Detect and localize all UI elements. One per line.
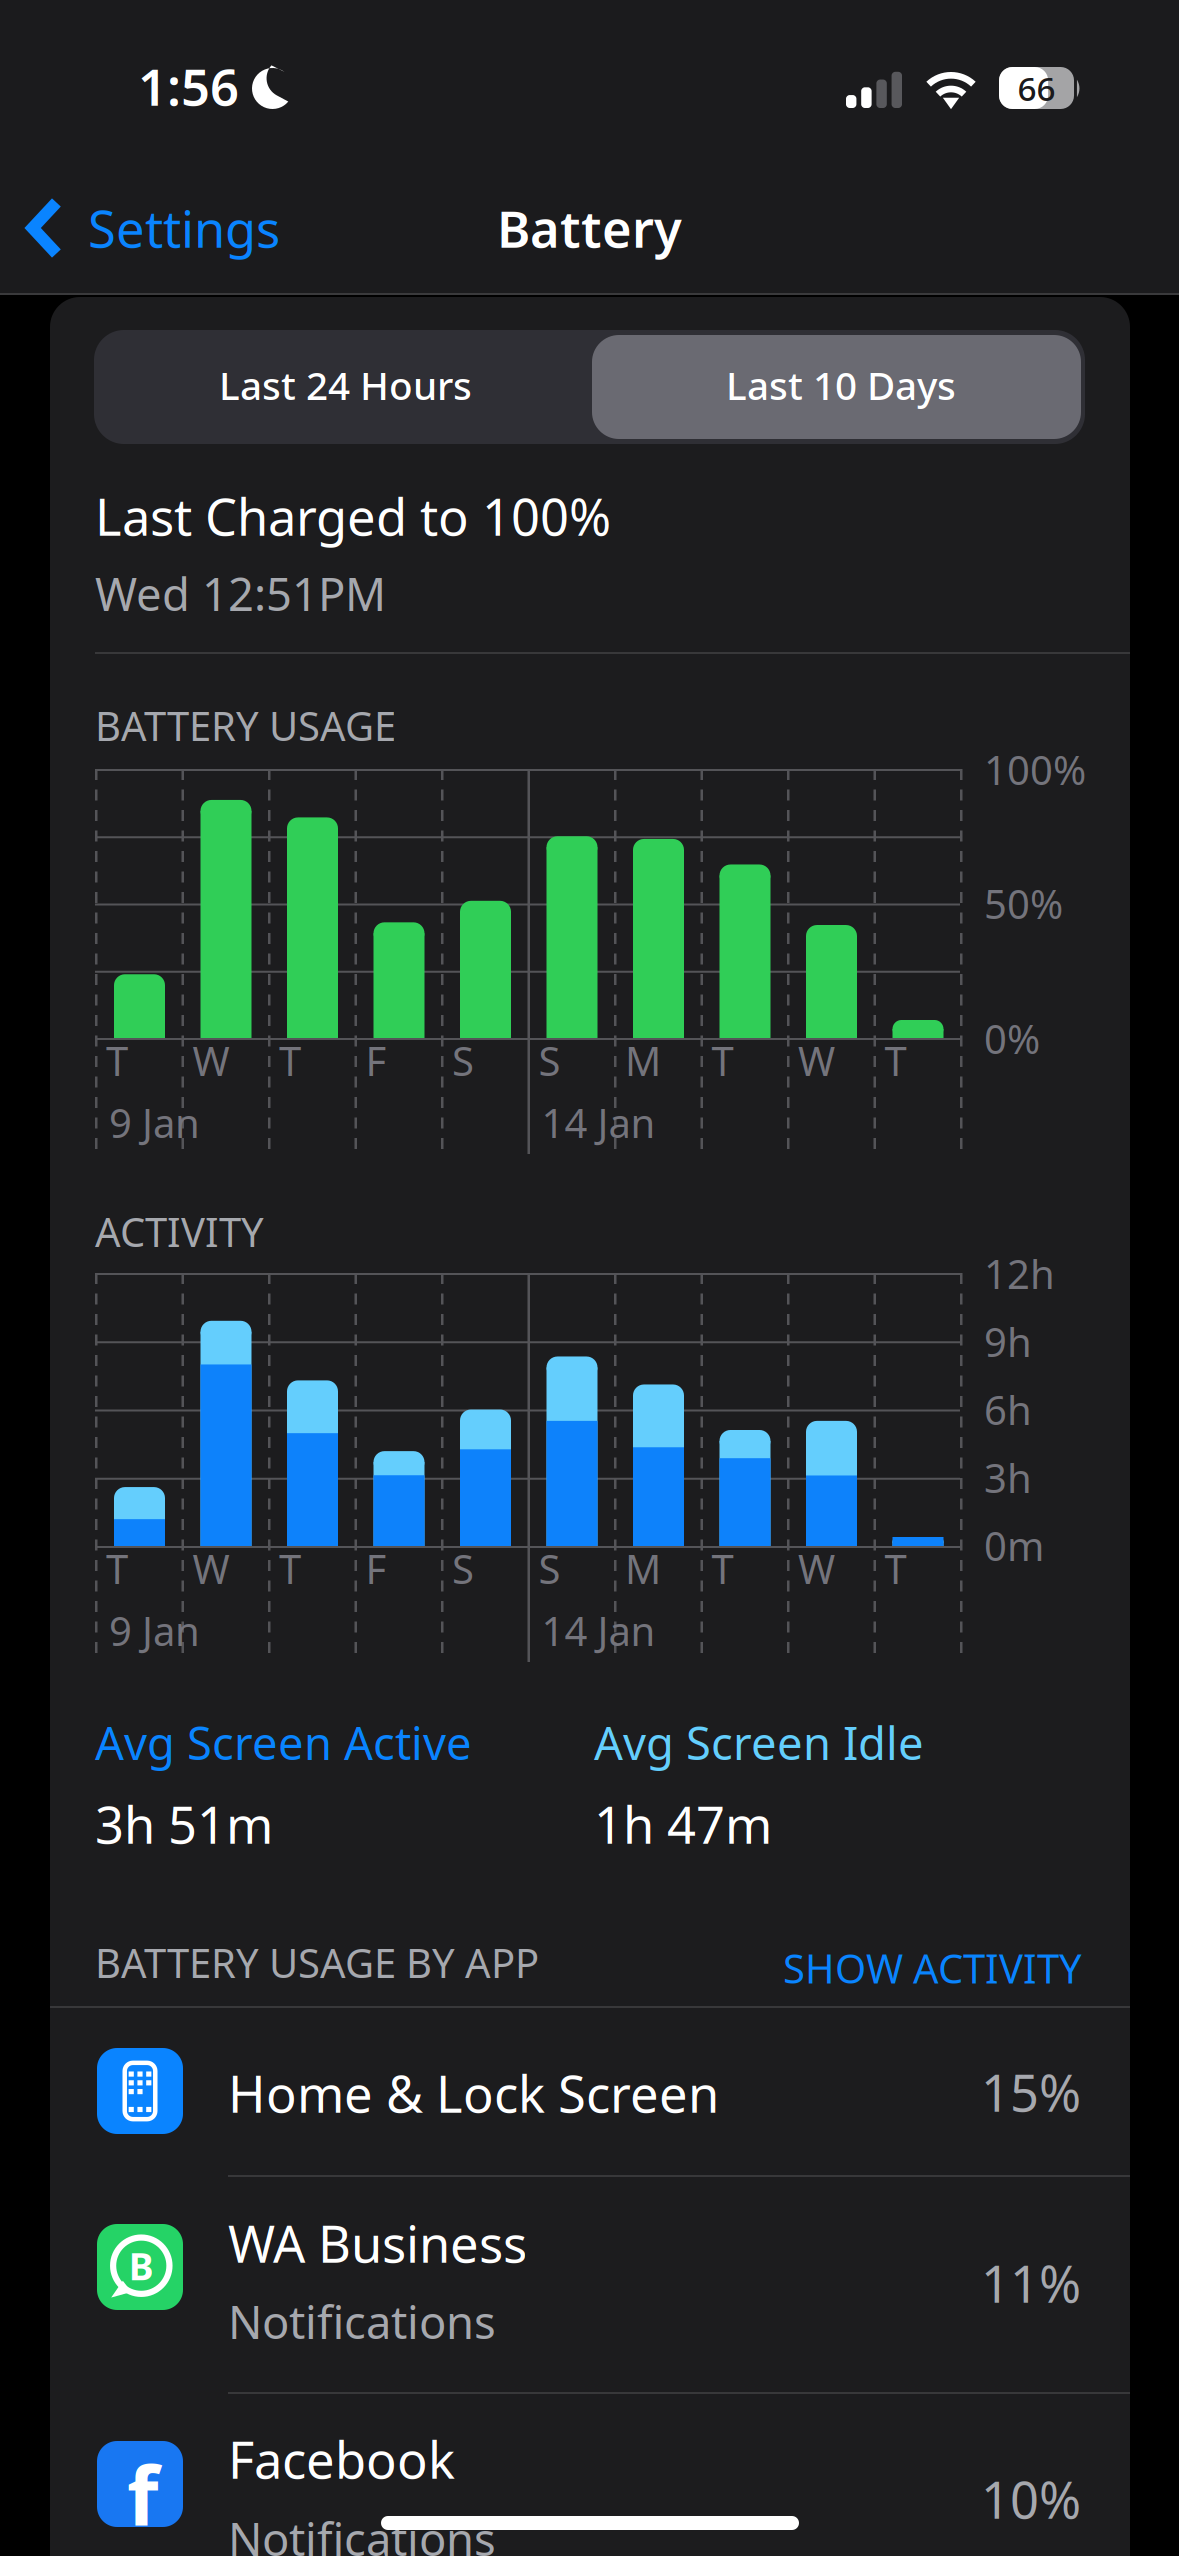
staticText: W (192, 1034, 229, 1087)
staticText: Notifications (228, 2291, 496, 2351)
staticText: S (452, 1034, 474, 1087)
staticText: Home & Lock Screen (228, 2059, 719, 2127)
staticText: 0m (984, 1519, 1044, 1572)
button[interactable]: SHOW ACTIVITY (662, 1932, 1082, 1996)
staticText: 14 Jan (541, 1096, 655, 1149)
staticText: SHOW ACTIVITY (783, 1941, 1082, 1994)
staticText: F (365, 1542, 386, 1595)
staticText: 9h (984, 1315, 1032, 1368)
staticText: B (129, 2241, 154, 2290)
staticText: T (884, 1542, 906, 1595)
staticText: 14 Jan (541, 1604, 655, 1657)
staticText: 66 (1017, 66, 1055, 110)
staticText: S (538, 1034, 560, 1087)
staticText: S (452, 1542, 474, 1595)
staticText: 0% (984, 1012, 1040, 1065)
staticText: 3h (984, 1451, 1032, 1504)
staticText: ACTIVITY (95, 1205, 264, 1258)
staticText: T (106, 1542, 128, 1595)
staticText: F (365, 1034, 386, 1087)
staticText: M (625, 1034, 661, 1087)
staticText: Last 24 Hours (219, 359, 472, 411)
button[interactable]: Last 10 Days (597, 330, 1085, 444)
staticText: W (798, 1034, 835, 1087)
staticText: Settings (88, 194, 280, 262)
staticText: WA Business (228, 2209, 527, 2277)
staticText: 11% (981, 2249, 1081, 2317)
staticText: Notifications (228, 2508, 496, 2556)
staticText: 9 Jan (109, 1096, 200, 1149)
staticText: 3h 51m (95, 1790, 273, 1858)
staticText: 100% (984, 743, 1086, 796)
staticText: f (127, 2440, 158, 2548)
staticText: T (279, 1034, 301, 1087)
staticText: W (798, 1542, 835, 1595)
staticText: Wed 12:51PM (95, 563, 386, 623)
staticText: 1:56 (138, 52, 239, 120)
staticText: S (538, 1542, 560, 1595)
staticText: Battery (497, 194, 682, 262)
staticText: BATTERY USAGE BY APP (95, 1936, 539, 1989)
staticText: 15% (981, 2058, 1081, 2126)
staticText: Last 10 Days (726, 359, 956, 411)
button[interactable]: f (50, 2392, 1130, 2556)
staticText: T (279, 1542, 301, 1595)
staticText: 12h (984, 1247, 1055, 1300)
staticText: BATTERY USAGE (95, 699, 396, 752)
staticText: W (192, 1542, 229, 1595)
staticText: 6h (984, 1383, 1032, 1436)
button[interactable]: B (50, 2175, 1130, 2392)
staticText: T (711, 1034, 733, 1087)
staticText: M (625, 1542, 661, 1595)
button[interactable]: Last 24 Hours (94, 330, 597, 444)
staticText: T (884, 1034, 906, 1087)
staticText: 1h 47m (594, 1790, 772, 1858)
staticText: Facebook (228, 2425, 455, 2493)
staticText: T (711, 1542, 733, 1595)
button[interactable]: Settings (0, 173, 290, 283)
staticText: Avg Screen Active (95, 1712, 472, 1772)
staticText: T (106, 1034, 128, 1087)
staticText: Last Charged to 100% (95, 482, 611, 550)
staticText: Avg Screen Idle (594, 1712, 924, 1772)
button[interactable]: Home & Lock Screen (50, 2006, 1130, 2175)
staticText: 10% (981, 2465, 1081, 2533)
staticText: 50% (984, 877, 1063, 930)
staticText: 9 Jan (109, 1604, 200, 1657)
